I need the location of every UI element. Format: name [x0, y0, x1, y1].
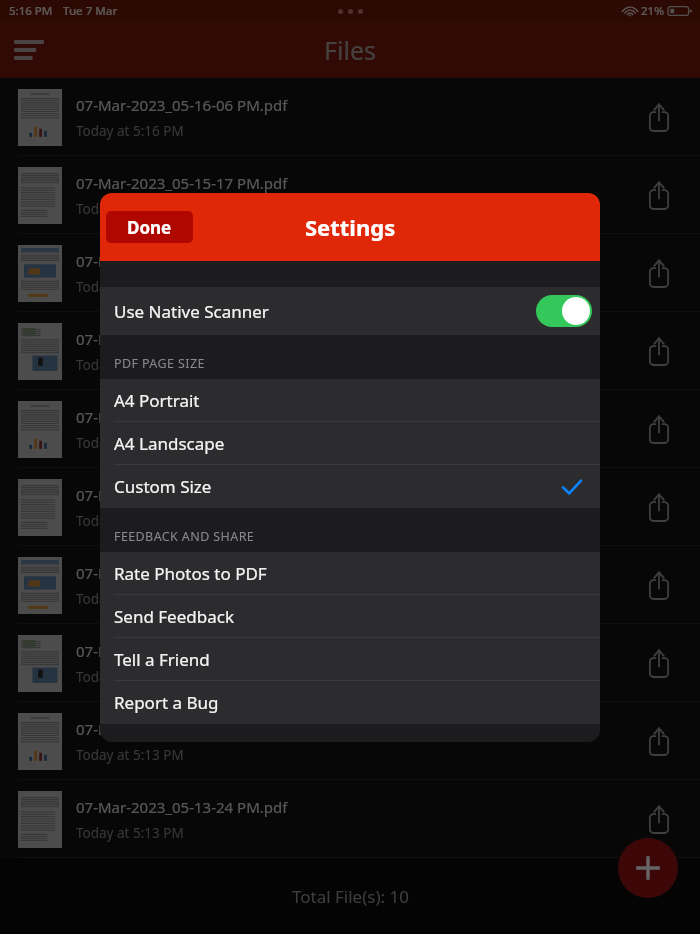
staticText: Today at 5:16 PM	[76, 122, 184, 140]
staticText: 07-Mar-2023_05-13-40 PM.pdf	[76, 641, 288, 661]
staticText: Today at 5:15 PM	[76, 278, 184, 296]
staticText: 07-Mar-2023_05-14-48 PM.pdf	[76, 329, 288, 349]
button[interactable]: Add file	[618, 838, 678, 898]
staticText: 07-Mar-2023_05-13-24 PM.pdf	[76, 797, 288, 817]
staticText: Total File(s): 10	[292, 885, 409, 908]
button[interactable]: Use Native Scanner	[100, 287, 600, 335]
staticText: A4 Portrait	[114, 389, 200, 412]
staticText: Today at 5:14 PM	[76, 434, 184, 452]
staticText: Today at 5:13 PM	[76, 590, 184, 608]
staticText: 07-Mar-2023_05-13-55 PM.pdf	[76, 563, 288, 583]
button[interactable]: 07-Mar-2023_05-14-30 PM.pdf	[0, 390, 700, 468]
staticText: Today at 5:13 PM	[76, 746, 184, 764]
button[interactable]: 07-Mar-2023_05-13-55 PM.pdf	[0, 546, 700, 624]
staticText: 07-Mar-2023_05-15-17 PM.pdf	[76, 173, 288, 193]
staticText: Files	[324, 33, 376, 67]
button[interactable]: 07-Mar-2023_05-16-06 PM.pdf	[0, 78, 700, 156]
button[interactable]: 07-Mar-2023_05-15-17 PM.pdf	[0, 156, 700, 234]
button[interactable]: 07-Mar-2023_05-13-24 PM.pdf	[0, 780, 700, 858]
staticText: Tell a Friend	[114, 648, 210, 671]
staticText: 5:16 PM	[9, 3, 53, 19]
staticText: Today at 5:14 PM	[76, 356, 184, 374]
button[interactable]: 07-Mar-2023_05-14-48 PM.pdf	[0, 312, 700, 390]
button[interactable]: Share	[636, 562, 682, 608]
button[interactable]: Share	[636, 328, 682, 374]
button[interactable]: 07-Mar-2023_05-13-40 PM.pdf	[0, 624, 700, 702]
staticText: Today at 5:14 PM	[76, 512, 184, 530]
button[interactable]: Share	[636, 406, 682, 452]
button[interactable]: Share	[636, 640, 682, 686]
staticText: 07-Mar-2023_05-16-06 PM.pdf	[76, 95, 288, 115]
staticText: 07-Mar-2023_05-14-30 PM.pdf	[76, 407, 288, 427]
staticText: Done	[127, 216, 172, 239]
button[interactable]: Share	[636, 718, 682, 764]
staticText: 21%	[641, 3, 664, 19]
button[interactable]: Menu	[6, 27, 52, 73]
button[interactable]: Share	[636, 250, 682, 296]
staticText: Tue 7 Mar	[63, 3, 118, 19]
staticText: Today at 5:15 PM	[76, 200, 184, 218]
button[interactable]: Send Feedback	[100, 595, 600, 638]
staticText: A4 Landscape	[114, 432, 225, 455]
button[interactable]: Tell a Friend	[100, 638, 600, 681]
staticText: Send Feedback	[114, 605, 234, 628]
staticText: 07-Mar-2023_05-14-11 PM.pdf	[76, 485, 288, 505]
button[interactable]: A4 Landscape	[100, 422, 600, 465]
staticText: Today at 5:13 PM	[76, 824, 184, 842]
button[interactable]: Custom Size	[100, 465, 600, 508]
button[interactable]: Report a Bug	[100, 681, 600, 724]
staticText: FEEDBACK AND SHARE	[114, 528, 255, 545]
staticText: PDF PAGE SIZE	[114, 355, 205, 372]
staticText: 07-Mar-2023_05-13-31 PM.pdf	[76, 719, 288, 739]
staticText: Custom Size	[114, 475, 212, 498]
button[interactable]: Rate Photos to PDF	[100, 552, 600, 595]
button[interactable]: A4 Portrait	[100, 379, 600, 422]
staticText: Today at 5:13 PM	[76, 668, 184, 686]
button[interactable]: Share	[636, 172, 682, 218]
button[interactable]: Done	[106, 211, 193, 243]
button[interactable]: Share	[636, 94, 682, 140]
staticText: Rate Photos to PDF	[114, 562, 267, 585]
button[interactable]: 07-Mar-2023_05-15-02 PM.pdf	[0, 234, 700, 312]
staticText: Use Native Scanner	[114, 300, 269, 323]
button[interactable]: 07-Mar-2023_05-14-11 PM.pdf	[0, 468, 700, 546]
staticText: 07-Mar-2023_05-15-02 PM.pdf	[76, 251, 288, 271]
button[interactable]: Share	[636, 484, 682, 530]
staticText: Settings	[305, 212, 396, 242]
staticText: Report a Bug	[114, 691, 219, 714]
button[interactable]: 07-Mar-2023_05-13-31 PM.pdf	[0, 702, 700, 780]
button[interactable]: Share	[636, 796, 682, 842]
